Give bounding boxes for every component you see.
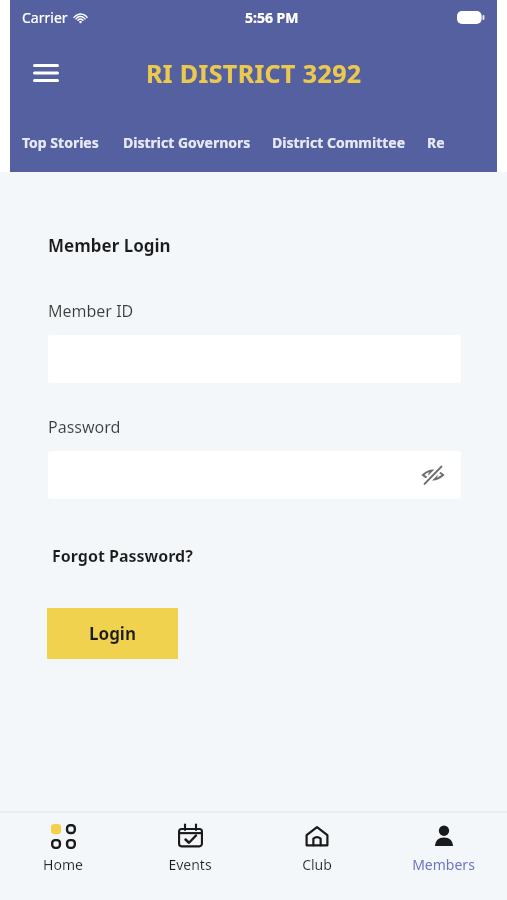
staticText: RI DISTRICT 3292 bbox=[146, 56, 362, 90]
button[interactable]: District Committee bbox=[272, 127, 406, 158]
staticText: Member ID bbox=[48, 300, 134, 322]
button[interactable]: District Governors bbox=[123, 127, 251, 158]
staticText: Login bbox=[89, 622, 137, 645]
button[interactable]: Login bbox=[47, 608, 178, 659]
staticText: Members bbox=[412, 855, 475, 874]
staticText: Top Stories bbox=[22, 133, 99, 152]
staticText: Member Login bbox=[48, 234, 171, 257]
button[interactable]: Events bbox=[126, 812, 253, 884]
staticText: District Committee bbox=[272, 133, 406, 152]
button[interactable]: Top Stories bbox=[22, 127, 99, 158]
button[interactable]: Re bbox=[427, 127, 445, 158]
staticText: Carrier bbox=[22, 8, 68, 27]
staticText: Forgot Password? bbox=[52, 545, 193, 567]
staticText: District Governors bbox=[123, 133, 251, 152]
staticText: Home bbox=[43, 855, 83, 874]
button[interactable]: Menu bbox=[24, 51, 68, 95]
staticText: Events bbox=[168, 855, 212, 874]
button[interactable]: Show password bbox=[415, 457, 451, 493]
staticText: 5:56 PM bbox=[245, 8, 299, 27]
staticText: Password bbox=[48, 416, 121, 438]
staticText: Club bbox=[302, 855, 332, 874]
button[interactable]: Forgot Password? bbox=[52, 545, 193, 567]
button[interactable]: Club bbox=[253, 812, 380, 884]
button[interactable]: Members bbox=[380, 812, 507, 884]
button[interactable]: Home bbox=[0, 812, 126, 884]
staticText: Re bbox=[427, 133, 445, 152]
